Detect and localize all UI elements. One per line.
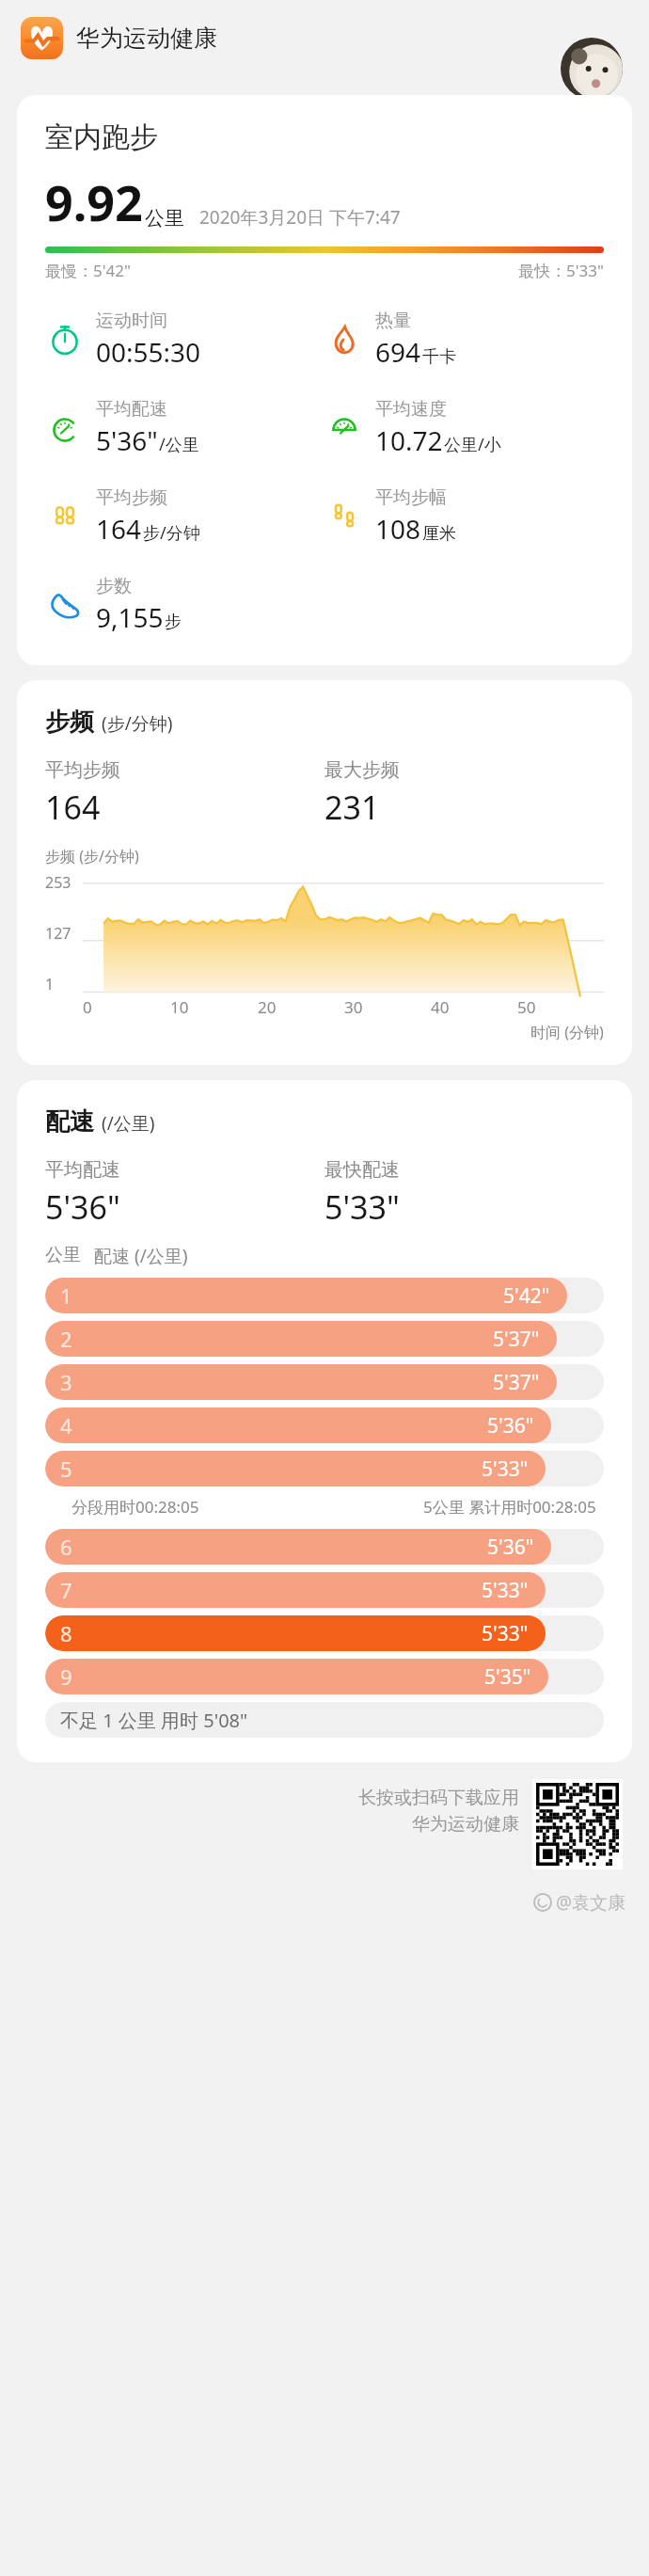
button[interactable]: 平均步频 bbox=[45, 486, 200, 547]
staticText: 公里 bbox=[145, 206, 184, 231]
staticText: 0 bbox=[83, 996, 92, 1018]
staticText: 不足 1 公里 用时 5'08" bbox=[60, 1708, 248, 1733]
staticText: 8 bbox=[60, 1619, 72, 1647]
staticText: 5'37" bbox=[493, 1369, 540, 1396]
staticText: 108 bbox=[375, 511, 421, 547]
button[interactable]: Download QR code bbox=[532, 1779, 623, 1869]
staticText: 5'36" bbox=[96, 422, 158, 458]
staticText: (/公里) bbox=[102, 1111, 155, 1136]
button[interactable]: 6 bbox=[45, 1529, 604, 1565]
staticText: 长按或扫码下载应用 bbox=[358, 1787, 519, 1809]
button[interactable]: 7 bbox=[45, 1572, 604, 1608]
staticText: 平均步频 bbox=[96, 486, 167, 509]
staticText: 9,155 bbox=[96, 599, 164, 635]
staticText: 5'37" bbox=[493, 1326, 540, 1353]
staticText: 配速 (/公里) bbox=[94, 1244, 188, 1268]
staticText: 最慢：5'42" bbox=[45, 260, 131, 281]
staticText: 运动时间 bbox=[96, 310, 167, 332]
staticText: 5'33" bbox=[482, 1455, 529, 1483]
staticText: 5'33" bbox=[324, 1185, 400, 1229]
staticText: 5'36" bbox=[487, 1534, 534, 1561]
staticText: 5'33" bbox=[482, 1620, 529, 1647]
staticText: 9.92 bbox=[45, 168, 143, 235]
staticText: 1 bbox=[45, 974, 55, 994]
button[interactable]: 运动时间 bbox=[45, 310, 201, 370]
staticText: 最快：5'33" bbox=[518, 260, 604, 281]
staticText: 公里 bbox=[45, 1244, 81, 1266]
staticText: 20 bbox=[258, 996, 277, 1018]
staticText: 公里/小 bbox=[444, 433, 501, 456]
staticText: 平均步频 bbox=[45, 758, 120, 782]
staticText: 694 bbox=[375, 334, 421, 370]
button[interactable]: 不足 1 公里 用时 5'08" bbox=[45, 1702, 604, 1738]
staticText: 5'42" bbox=[503, 1282, 550, 1310]
staticText: 30 bbox=[344, 996, 363, 1018]
button[interactable]: 平均速度 bbox=[324, 398, 501, 458]
staticText: 50 bbox=[517, 996, 536, 1018]
staticText: 分段用时00:28:05 bbox=[71, 1496, 199, 1518]
staticText: 5公里 累计用时00:28:05 bbox=[423, 1496, 596, 1518]
staticText: 5'33" bbox=[482, 1577, 529, 1604]
button[interactable]: 热量 bbox=[324, 310, 456, 370]
staticText: 5'36" bbox=[45, 1185, 120, 1229]
staticText: 1 bbox=[60, 1281, 72, 1310]
staticText: 华为运动健康 bbox=[76, 24, 217, 53]
staticText: 2 bbox=[60, 1325, 72, 1353]
staticText: 配速 bbox=[45, 1106, 94, 1137]
staticText: 6 bbox=[60, 1533, 72, 1561]
staticText: 7 bbox=[60, 1576, 72, 1604]
staticText: 9 bbox=[60, 1662, 72, 1691]
staticText: 5'36" bbox=[487, 1412, 534, 1439]
staticText: 步数 bbox=[96, 575, 132, 597]
staticText: (步/分钟) bbox=[102, 711, 173, 736]
staticText: 00:55:30 bbox=[96, 334, 201, 370]
staticText: 5'35" bbox=[484, 1663, 531, 1691]
staticText: 10 bbox=[170, 996, 189, 1018]
staticText: 步/分钟 bbox=[143, 521, 200, 545]
staticText: 最大步频 bbox=[324, 758, 400, 782]
button[interactable]: 5 bbox=[45, 1451, 604, 1487]
staticText: 热量 bbox=[375, 310, 411, 332]
staticText: 2020年3月20日 下午7:47 bbox=[199, 205, 401, 230]
staticText: 127 bbox=[45, 923, 71, 944]
staticText: 步 bbox=[165, 612, 182, 633]
staticText: 步频 bbox=[45, 707, 94, 738]
button[interactable]: 2 bbox=[45, 1321, 604, 1357]
staticText: 10.72 bbox=[375, 422, 443, 458]
staticText: 164 bbox=[45, 786, 101, 829]
staticText: 千卡 bbox=[422, 346, 456, 368]
staticText: /公里 bbox=[159, 433, 199, 456]
button[interactable]: 步数 bbox=[45, 575, 182, 635]
staticText: 室内跑步 bbox=[45, 119, 158, 155]
staticText: 平均步幅 bbox=[375, 486, 447, 509]
staticText: @袁文康 bbox=[556, 1890, 626, 1915]
button[interactable]: Profile photo bbox=[561, 38, 623, 100]
staticText: 平均速度 bbox=[375, 398, 447, 421]
staticText: 平均配速 bbox=[96, 398, 167, 421]
button[interactable]: 1 bbox=[45, 1278, 604, 1313]
button[interactable]: 4 bbox=[45, 1407, 604, 1443]
staticText: 平均配速 bbox=[45, 1158, 120, 1182]
button[interactable]: 华为运动健康 bbox=[21, 17, 217, 59]
button[interactable]: 9 bbox=[45, 1659, 604, 1694]
staticText: 5 bbox=[60, 1455, 72, 1483]
staticText: 华为运动健康 bbox=[412, 1813, 519, 1836]
button[interactable]: 平均步幅 bbox=[324, 486, 456, 547]
staticText: 步频 (步/分钟) bbox=[45, 846, 139, 867]
staticText: 时间 (分钟) bbox=[530, 1022, 604, 1042]
staticText: 231 bbox=[324, 786, 380, 829]
staticText: 厘米 bbox=[422, 523, 456, 545]
button[interactable]: 平均配速 bbox=[45, 398, 199, 458]
button[interactable]: 3 bbox=[45, 1364, 604, 1400]
staticText: 253 bbox=[45, 872, 71, 893]
staticText: 3 bbox=[60, 1368, 72, 1396]
staticText: 164 bbox=[96, 511, 142, 547]
staticText: 40 bbox=[431, 996, 450, 1018]
button[interactable]: 8 bbox=[45, 1615, 604, 1651]
staticText: 4 bbox=[60, 1411, 72, 1439]
staticText: 最快配速 bbox=[324, 1158, 400, 1182]
